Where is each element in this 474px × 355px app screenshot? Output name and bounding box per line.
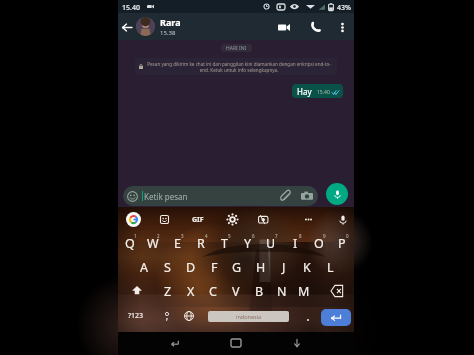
staticText: I <box>293 235 298 252</box>
button[interactable]: Backspace <box>331 285 343 297</box>
button[interactable]: P <box>331 231 353 255</box>
staticText: 15.38 <box>160 29 176 37</box>
button[interactable]: Period <box>303 315 312 324</box>
staticText: B <box>255 283 264 300</box>
button[interactable]: Voice input <box>338 215 348 225</box>
staticText: K <box>303 259 311 276</box>
button[interactable]: T <box>213 231 235 255</box>
button[interactable]: Enter <box>321 309 351 326</box>
button[interactable]: Voice message <box>326 183 348 205</box>
button[interactable]: O <box>308 231 330 255</box>
button[interactable]: L <box>319 255 341 279</box>
button[interactable]: Home <box>225 332 247 354</box>
button[interactable]: V <box>225 279 247 303</box>
staticText: 4 <box>205 233 208 239</box>
staticText: R <box>197 235 205 252</box>
button[interactable]: D <box>180 255 202 279</box>
button[interactable]: J <box>273 255 295 279</box>
staticText: Rara <box>160 16 181 28</box>
button[interactable]: S <box>156 255 178 279</box>
staticText: GIF <box>192 215 204 225</box>
staticText: W <box>147 235 159 252</box>
staticText: H <box>256 259 266 276</box>
button[interactable]: U <box>260 231 282 255</box>
staticText: Pesan yang dikirim ke chat ini dan pangg… <box>145 61 333 73</box>
staticText: J <box>282 259 286 276</box>
button[interactable]: A <box>133 255 155 279</box>
staticText: 5 <box>228 233 231 239</box>
staticText: indonesia <box>236 313 262 320</box>
button[interactable]: Hay <box>292 84 343 98</box>
button[interactable]: Stickers <box>258 214 269 225</box>
button[interactable]: GIF <box>190 212 206 228</box>
button[interactable]: Emoji <box>160 215 169 224</box>
staticText: Y <box>244 235 252 252</box>
button[interactable]: Comma <box>161 310 173 322</box>
staticText: 0 <box>346 233 349 239</box>
staticText: G <box>232 259 242 276</box>
button[interactable]: Symbols <box>124 304 148 328</box>
staticText: L <box>327 259 334 276</box>
staticText: T <box>221 235 228 252</box>
button[interactable]: Hide keyboard <box>286 332 308 354</box>
button[interactable]: Shift <box>132 286 142 296</box>
button[interactable]: R <box>190 231 212 255</box>
button[interactable]: I <box>284 231 306 255</box>
button[interactable]: Y <box>237 231 259 255</box>
button[interactable]: Ketik pesan <box>123 186 318 206</box>
button[interactable]: More options <box>332 17 352 37</box>
button[interactable]: Pesan yang dikirim ke chat ini dan pangg… <box>135 58 337 75</box>
button[interactable]: Settings <box>227 214 238 225</box>
button[interactable]: Back <box>163 332 185 354</box>
staticText: A <box>140 259 148 276</box>
staticText: D <box>186 259 196 276</box>
button[interactable]: C <box>202 279 224 303</box>
button[interactable]: X <box>180 279 202 303</box>
staticText: M <box>298 283 310 300</box>
button[interactable]: N <box>271 279 293 303</box>
button[interactable]: E <box>166 231 188 255</box>
button[interactable]: W <box>142 231 164 255</box>
staticText: Z <box>164 283 172 300</box>
staticText: 1 <box>134 233 137 239</box>
button[interactable]: G <box>226 255 248 279</box>
button[interactable]: More options <box>303 214 314 225</box>
button[interactable]: Call <box>305 16 327 38</box>
button[interactable]: Z <box>157 279 179 303</box>
button[interactable]: Back <box>118 18 136 36</box>
button[interactable]: F <box>203 255 225 279</box>
staticText: N <box>277 283 287 300</box>
button[interactable]: M <box>293 279 315 303</box>
staticText: P <box>338 235 346 252</box>
button[interactable]: K <box>296 255 318 279</box>
button[interactable]: Q <box>119 231 141 255</box>
staticText: 15.40 <box>317 89 330 96</box>
staticText: S <box>164 259 171 276</box>
staticText: C <box>209 283 217 300</box>
staticText: Hay <box>297 86 312 97</box>
staticText: E <box>174 235 181 252</box>
staticText: HARI INI <box>226 45 247 52</box>
button[interactable]: Video call <box>273 16 295 38</box>
staticText: U <box>266 235 276 252</box>
staticText: 15.40 <box>122 3 140 13</box>
button[interactable]: Change language <box>184 311 194 321</box>
staticText: F <box>211 259 218 276</box>
staticText: 43% <box>337 3 351 13</box>
staticText: X <box>187 283 195 300</box>
staticText: O <box>314 235 324 252</box>
staticText: Ketik pesan <box>144 191 188 202</box>
button[interactable]: Google search <box>126 212 141 227</box>
staticText: ?123 <box>128 311 144 321</box>
staticText: 8 <box>299 233 302 239</box>
staticText: 6 <box>252 233 255 239</box>
staticText: V <box>232 283 240 300</box>
staticText: 9 <box>323 233 326 239</box>
staticText: 2 <box>157 233 160 239</box>
button[interactable]: H <box>250 255 272 279</box>
staticText: 7 <box>275 233 278 239</box>
staticText: Q <box>125 235 135 252</box>
button[interactable]: B <box>248 279 270 303</box>
button[interactable]: indonesia <box>208 311 289 322</box>
staticText: 3 <box>181 233 184 239</box>
